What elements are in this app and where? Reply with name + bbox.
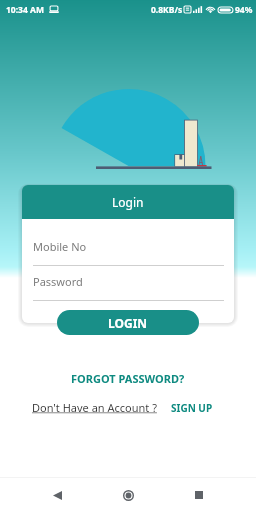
button[interactable]: LOGIN xyxy=(57,310,199,335)
button[interactable]: Back xyxy=(43,481,71,509)
staticText: Password xyxy=(33,274,83,289)
staticText: 10:34 AM xyxy=(6,4,44,16)
staticText: Don't Have an Account ? xyxy=(32,400,157,415)
button[interactable]: SIGN UP xyxy=(171,401,213,415)
button[interactable]: Login xyxy=(22,185,234,219)
staticText: LOGIN xyxy=(108,315,148,331)
button[interactable]: Home xyxy=(114,481,142,509)
button[interactable]: FORGOT PASSWORD? xyxy=(65,368,191,389)
staticText: Login xyxy=(112,194,144,210)
staticText: SIGN UP xyxy=(171,401,213,415)
staticText: Mobile No xyxy=(33,239,87,254)
staticText: FORGOT PASSWORD? xyxy=(71,371,185,386)
staticText: 94% xyxy=(235,4,253,16)
button[interactable]: Recent apps xyxy=(185,481,213,509)
staticText: 0.8KB/s xyxy=(151,4,183,16)
